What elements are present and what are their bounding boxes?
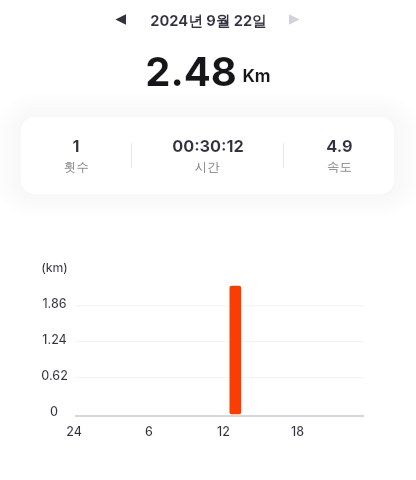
staticText: 2.48 [145,47,237,95]
staticText: 0.62 [41,368,68,383]
staticText: 18 [291,424,304,439]
button[interactable]: Previous day [107,5,135,33]
staticText: 1 [72,136,80,156]
staticText: 횟수 [64,159,89,175]
staticText: 1.24 [42,332,67,347]
staticText: 4.9 [326,136,353,156]
button[interactable]: Next day [279,5,307,33]
staticText: (km) [41,260,68,275]
staticText: Km [242,65,271,86]
staticText: 6 [145,424,153,439]
staticText: 1.86 [42,296,67,311]
button[interactable]: 00:30:12 [132,117,283,194]
staticText: 2024년 9월 22일 [150,12,267,30]
staticText: 시간 [195,159,220,175]
staticText: 0 [50,404,58,419]
staticText: 24 [66,424,82,439]
button[interactable]: 1 [21,117,131,194]
staticText: 속도 [327,159,352,175]
staticText: 00:30:12 [172,136,244,156]
staticText: 12 [217,424,230,439]
button[interactable]: 4.9 [284,117,394,194]
